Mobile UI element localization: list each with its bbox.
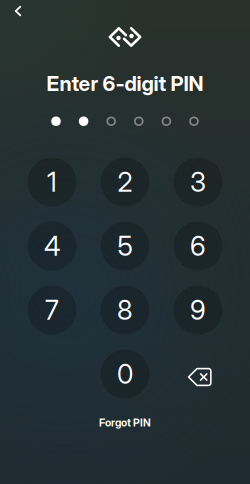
staticText: 3 xyxy=(190,166,206,198)
staticText: Forgot PIN xyxy=(99,416,151,429)
staticText: 6 xyxy=(190,230,206,262)
staticText: 1 xyxy=(47,166,57,198)
button[interactable]: Delete xyxy=(173,349,222,398)
staticText: 7 xyxy=(45,294,59,326)
staticText: 0 xyxy=(117,358,133,390)
button[interactable]: 3 xyxy=(173,157,222,206)
staticText: 4 xyxy=(44,230,60,262)
staticText: 9 xyxy=(190,294,206,326)
button[interactable]: 5 xyxy=(100,221,149,270)
staticText: 8 xyxy=(117,294,133,326)
button[interactable]: 0 xyxy=(100,349,149,398)
button[interactable]: 7 xyxy=(27,285,76,334)
staticText: Enter 6-digit PIN xyxy=(46,71,203,96)
button[interactable]: 6 xyxy=(173,221,222,270)
button[interactable]: 2 xyxy=(100,157,149,206)
button[interactable]: Forgot PIN xyxy=(85,408,165,437)
button[interactable]: 9 xyxy=(173,285,222,334)
staticText: 5 xyxy=(117,230,132,262)
button[interactable]: 4 xyxy=(27,221,76,270)
button[interactable]: 1 xyxy=(27,157,76,206)
staticText: 2 xyxy=(117,166,132,198)
button[interactable]: Back xyxy=(5,0,31,22)
button[interactable]: 8 xyxy=(100,285,149,334)
